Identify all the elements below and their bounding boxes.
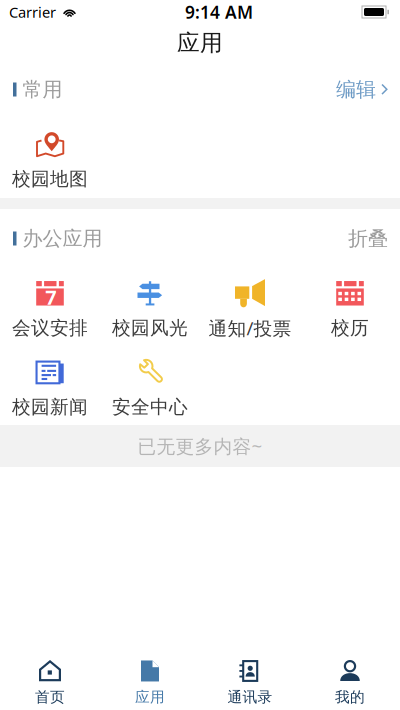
button[interactable]: 7 (0, 277, 100, 341)
staticText: Carrier (9, 2, 56, 22)
button[interactable]: 我的 (300, 656, 400, 710)
button[interactable]: 安全中心 (100, 356, 200, 420)
staticText: 校园新闻 (12, 395, 88, 418)
button[interactable]: 校历 (300, 277, 400, 341)
staticText: 我的 (335, 688, 365, 706)
button[interactable]: 编辑 (336, 77, 388, 102)
staticText: 校园地图 (12, 167, 88, 190)
staticText: 首页 (35, 688, 65, 706)
staticText: 9:14 AM (185, 0, 253, 23)
staticText: 校园风光 (112, 316, 188, 339)
staticText: 安全中心 (112, 395, 188, 418)
staticText: 应用 (135, 688, 165, 706)
button[interactable]: 校园风光 (100, 277, 200, 341)
staticText: 应用 (177, 29, 223, 57)
button[interactable]: 首页 (0, 656, 100, 710)
button[interactable]: 通知/投票 (200, 277, 300, 341)
staticText: 常用 (22, 77, 62, 102)
staticText: 折叠 (348, 226, 388, 251)
button[interactable]: 通讯录 (200, 656, 300, 710)
button[interactable]: 校园新闻 (0, 356, 100, 420)
staticText: 编辑 (336, 77, 376, 102)
staticText: 通知/投票 (208, 316, 291, 340)
staticText: 7 (45, 284, 56, 310)
staticText: 通讯录 (227, 688, 272, 706)
button[interactable]: 折叠 (348, 226, 388, 251)
staticText: 已无更多内容~ (137, 434, 262, 458)
button[interactable]: 应用 (100, 656, 200, 710)
staticText: 会议安排 (12, 316, 88, 339)
button[interactable]: 校园地图 (0, 128, 100, 192)
staticText: 办公应用 (22, 226, 102, 251)
staticText: 校历 (331, 316, 369, 339)
